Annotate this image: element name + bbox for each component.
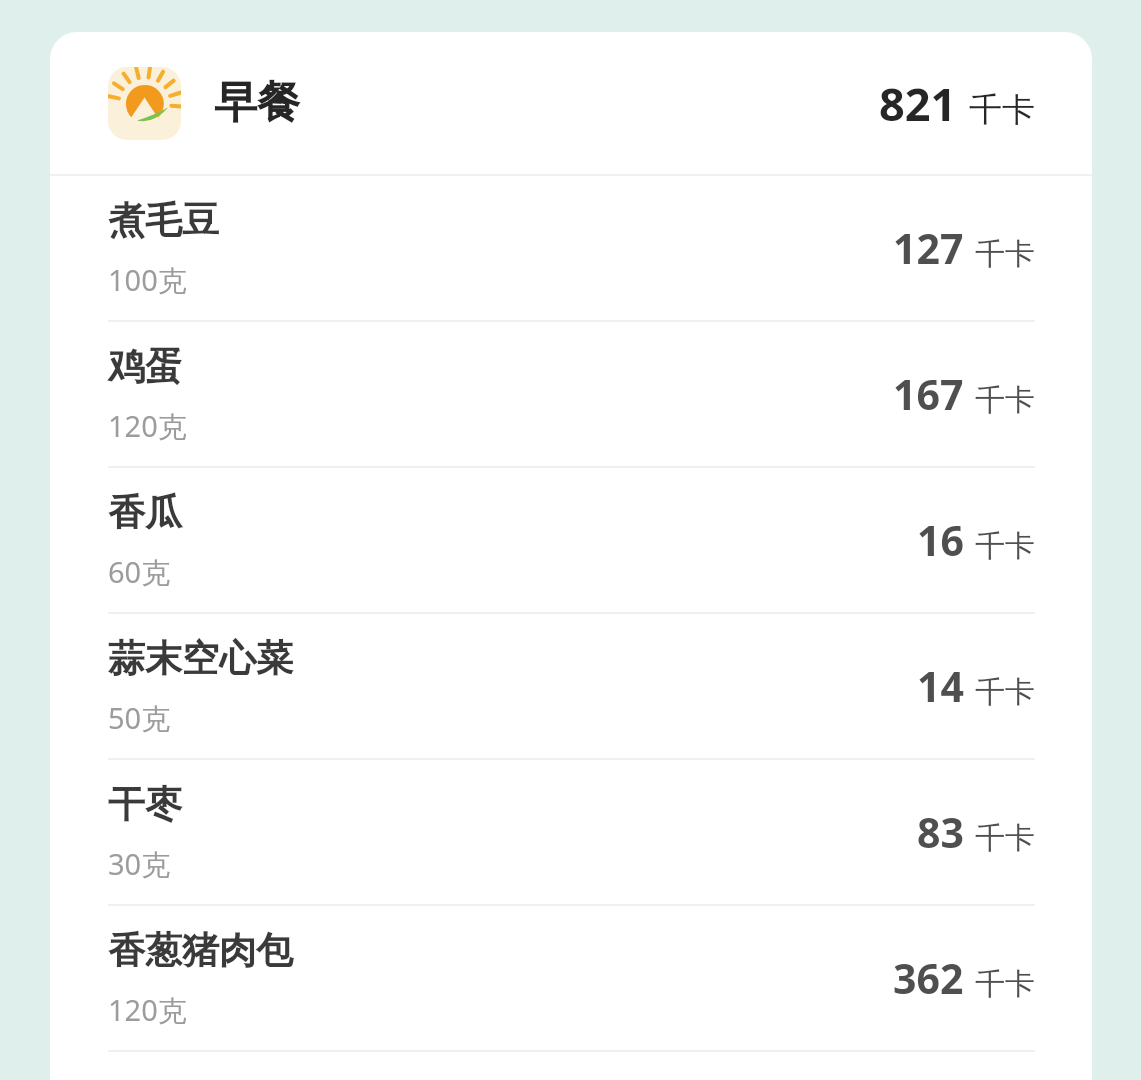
staticText: 50克: [108, 698, 171, 738]
staticText: 16: [917, 512, 964, 568]
other: Breakfast: [108, 67, 181, 140]
staticText: 100克: [108, 260, 187, 300]
staticText: 千卡: [975, 965, 1035, 1003]
staticText: 30克: [108, 844, 171, 884]
staticText: 60克: [108, 552, 171, 592]
staticText: 蒜末空心菜: [108, 635, 293, 682]
staticText: 821: [879, 73, 957, 134]
staticText: 120克: [108, 990, 187, 1030]
staticText: 127: [893, 220, 964, 276]
staticText: 千卡: [969, 89, 1035, 131]
button[interactable]: 鸡蛋: [50, 322, 1092, 466]
staticText: 167: [893, 366, 964, 422]
staticText: 千卡: [975, 527, 1035, 565]
button[interactable]: 煮毛豆: [50, 176, 1092, 320]
staticText: 鸡蛋: [108, 343, 182, 390]
staticText: 香瓜: [108, 489, 182, 536]
staticText: 千卡: [975, 235, 1035, 273]
staticText: 362: [893, 950, 964, 1006]
button[interactable]: Breakfast: [50, 32, 1092, 174]
button[interactable]: 蒜末空心菜: [50, 614, 1092, 758]
staticText: 83: [917, 804, 964, 860]
button[interactable]: 香葱猪肉包: [50, 906, 1092, 1050]
staticText: 早餐: [214, 76, 300, 130]
staticText: 千卡: [975, 673, 1035, 711]
staticText: 千卡: [975, 819, 1035, 857]
button[interactable]: 香瓜: [50, 468, 1092, 612]
staticText: 120克: [108, 406, 187, 446]
button[interactable]: 干枣: [50, 760, 1092, 904]
staticText: 香葱猪肉包: [108, 927, 293, 974]
staticText: 14: [917, 658, 964, 714]
staticText: 煮毛豆: [108, 197, 219, 244]
staticText: 干枣: [108, 781, 182, 828]
staticText: 千卡: [975, 381, 1035, 419]
